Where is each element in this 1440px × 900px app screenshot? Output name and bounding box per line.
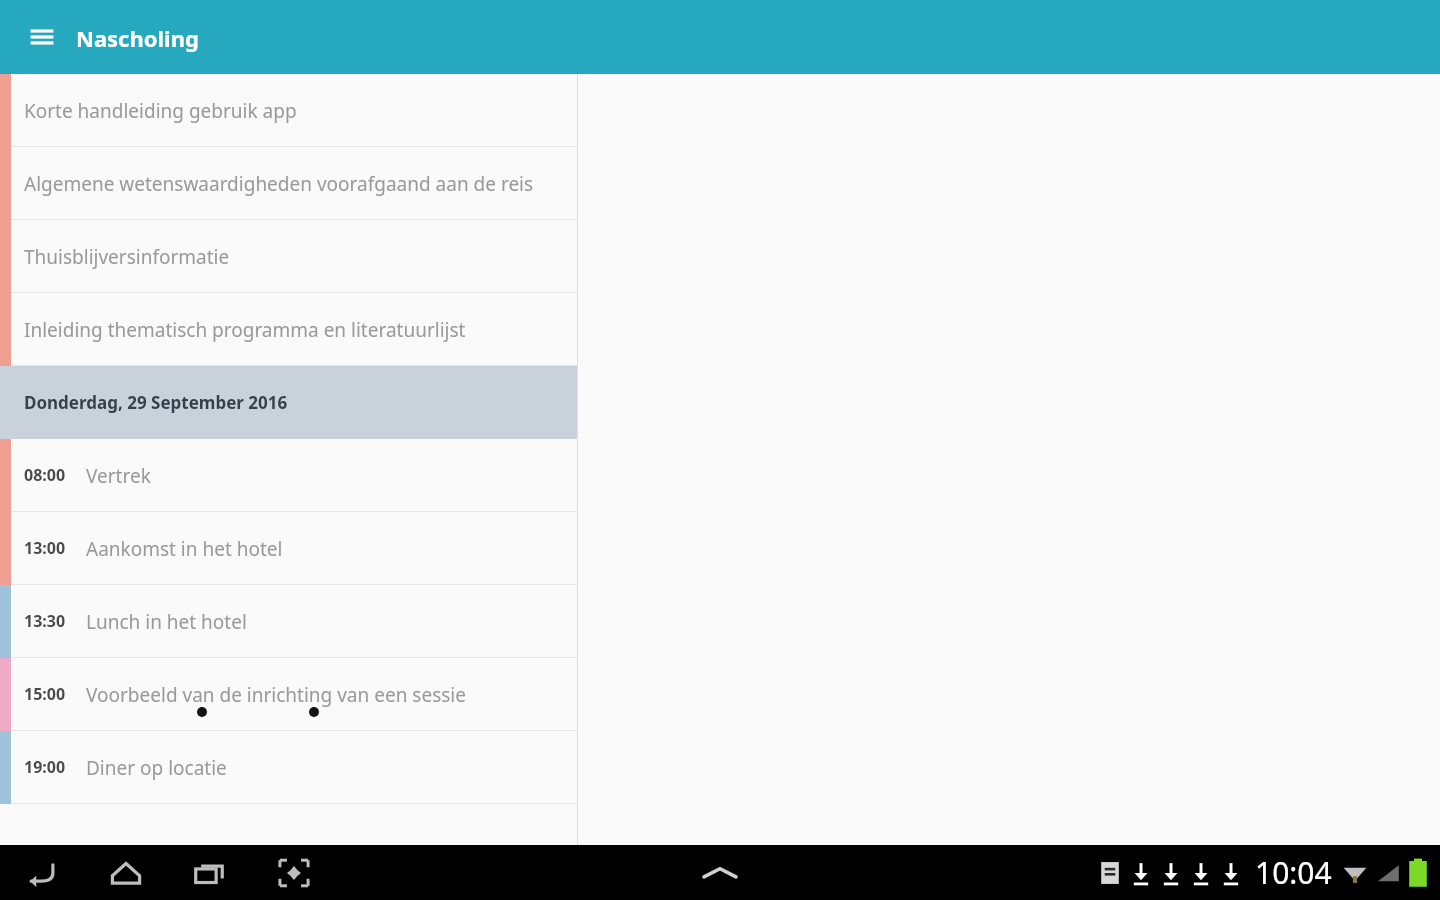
button[interactable]: Thuisblijversinformatie	[0, 220, 578, 293]
staticText: Thuisblijversinformatie	[24, 244, 230, 270]
staticText: Vertrek	[86, 463, 151, 489]
staticText: Diner op locatie	[86, 755, 227, 781]
button[interactable]: Korte handleiding gebruik app	[0, 74, 578, 147]
button[interactable]: Back	[0, 845, 84, 900]
button[interactable]: Open navigation menu	[20, 15, 64, 59]
staticText: Voorbeeld van de inrichting van een sess…	[86, 682, 466, 708]
staticText: Algemene wetenswaardigheden voorafgaand …	[24, 171, 534, 197]
staticText: 13:30	[24, 610, 66, 632]
button[interactable]: 13:00	[0, 512, 578, 585]
staticText: Aankomst in het hotel	[86, 536, 283, 562]
staticText: 13:00	[24, 537, 66, 559]
button[interactable]: Algemene wetenswaardigheden voorafgaand …	[0, 147, 578, 220]
staticText: 08:00	[24, 464, 66, 486]
staticText: Inleiding thematisch programma en litera…	[24, 317, 466, 343]
staticText: 15:00	[24, 683, 66, 705]
button[interactable]: Screenshot	[252, 845, 336, 900]
button[interactable]: 19:00	[0, 731, 578, 804]
staticText: 10:04	[1255, 852, 1332, 893]
staticText: 19:00	[24, 756, 66, 778]
button[interactable]: Inleiding thematisch programma en litera…	[0, 293, 578, 366]
staticText: Donderdag, 29 September 2016	[24, 391, 288, 414]
staticText: Korte handleiding gebruik app	[24, 98, 297, 124]
button[interactable]: Home	[84, 845, 168, 900]
button[interactable]: Recent apps	[168, 845, 252, 900]
button[interactable]: Expand notifications	[685, 850, 755, 896]
staticText: Nascholing	[76, 23, 199, 53]
button[interactable]: 13:30	[0, 585, 578, 658]
button[interactable]: 15:00	[0, 658, 578, 731]
button[interactable]: Donderdag, 29 September 2016	[0, 366, 578, 439]
staticText: Lunch in het hotel	[86, 609, 247, 635]
button[interactable]: 08:00	[0, 439, 578, 512]
